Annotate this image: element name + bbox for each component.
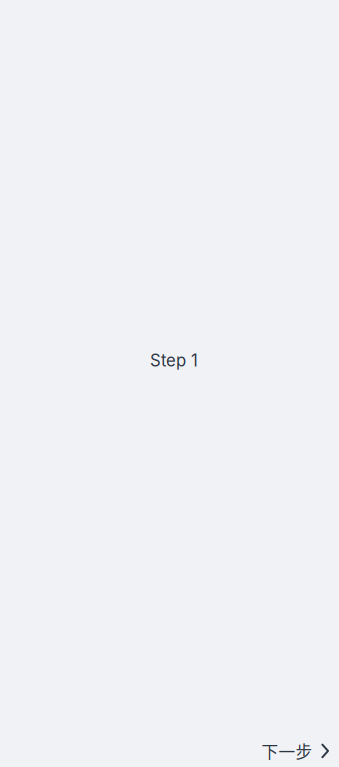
button[interactable]: 下一步 [249, 731, 337, 767]
staticText: 下一步 [261, 739, 312, 763]
staticText: Step 1 [150, 350, 198, 370]
